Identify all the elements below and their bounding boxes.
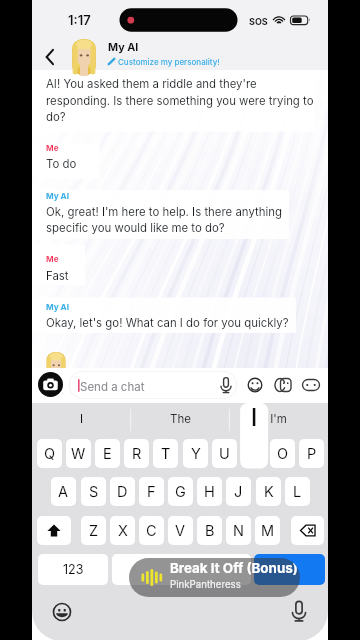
staticText: O <box>277 445 289 463</box>
staticText: P <box>307 445 317 463</box>
button[interactable]: 123 <box>38 554 108 585</box>
staticText: S <box>89 483 99 501</box>
staticText: J <box>234 483 243 501</box>
staticText: Q <box>44 445 56 463</box>
button[interactable]: My AI <box>107 38 237 68</box>
button[interactable]: N <box>226 516 251 545</box>
button[interactable]: D <box>110 477 135 506</box>
staticText: Me <box>46 254 59 264</box>
button[interactable]: I'm <box>229 403 328 433</box>
staticText: T <box>161 445 171 463</box>
staticText: X <box>118 522 128 540</box>
button[interactable]: Shift <box>37 516 71 545</box>
staticText: U <box>219 445 230 463</box>
button[interactable]: I <box>32 403 131 433</box>
staticText: SOS <box>249 16 268 27</box>
button[interactable]: R <box>124 439 149 468</box>
staticText: D <box>117 483 128 501</box>
button[interactable]: Send <box>254 554 325 585</box>
staticText: To do <box>46 157 77 171</box>
staticText: The <box>131 412 230 426</box>
staticText: Okay, let's go! What can I do for you qu… <box>46 316 289 330</box>
staticText: Send a chat <box>80 380 145 394</box>
button[interactable]: U <box>212 439 237 468</box>
staticText: do? <box>46 110 66 124</box>
staticText: responding. Is there something you were … <box>46 94 314 108</box>
staticText: Ok, great! I'm here to help. Is there an… <box>46 205 282 219</box>
button[interactable]: F <box>139 477 164 506</box>
button[interactable]: C <box>139 516 164 545</box>
button[interactable]: Voice note <box>215 374 237 396</box>
button[interactable]: Stickers <box>272 374 294 396</box>
button[interactable]: G <box>168 477 193 506</box>
staticText: A <box>58 483 69 501</box>
staticText: 123 <box>63 562 84 577</box>
staticText: M <box>261 522 275 540</box>
button[interactable]: A <box>51 477 76 506</box>
staticText: G <box>175 483 186 501</box>
staticText: Customize my personality! <box>118 57 220 67</box>
button[interactable]: V <box>168 516 193 545</box>
button[interactable]: Emoji keyboard <box>51 601 73 623</box>
staticText: PinkPantheress <box>170 579 241 591</box>
button[interactable]: P <box>299 439 324 468</box>
button[interactable]: M <box>255 516 280 545</box>
button[interactable]: Break It Off (Bonus) <box>129 558 300 597</box>
staticText: R <box>132 445 142 463</box>
button[interactable]: Open camera <box>38 372 63 397</box>
staticText: 1:17 <box>68 12 91 28</box>
staticText: C <box>146 522 157 540</box>
staticText: F <box>147 483 156 501</box>
button[interactable]: X <box>110 516 135 545</box>
staticText: V <box>175 522 186 540</box>
button[interactable]: Back <box>39 44 65 70</box>
staticText: E <box>103 445 112 463</box>
staticText: Break It Off (Bonus) <box>170 560 298 576</box>
staticText: AI! You asked them a riddle and they're <box>46 77 257 91</box>
staticText: My AI <box>108 41 139 54</box>
button[interactable]: H <box>197 477 222 506</box>
button[interactable]: B <box>197 516 222 545</box>
button[interactable]: E <box>95 439 120 468</box>
button[interactable]: Voice input <box>288 600 310 622</box>
staticText: Y <box>191 445 201 463</box>
staticText: My AI <box>46 191 69 201</box>
staticText: Me <box>46 143 59 153</box>
button[interactable]: S <box>81 477 106 506</box>
staticText: K <box>264 483 274 501</box>
button[interactable]: Games <box>300 374 322 396</box>
staticText: N <box>233 522 244 540</box>
staticText: Fast <box>46 269 69 283</box>
button[interactable]: K <box>256 477 281 506</box>
staticText: B <box>205 522 215 540</box>
button[interactable]: Send a chat <box>69 371 237 399</box>
button[interactable]: O <box>270 439 295 468</box>
button[interactable]: J <box>226 477 251 506</box>
staticText: I'm <box>229 412 328 426</box>
button[interactable]: W <box>66 439 91 468</box>
staticText: I <box>240 402 268 432</box>
button[interactable]: The <box>131 403 230 433</box>
staticText: W <box>71 445 86 463</box>
staticText: My AI <box>46 302 69 312</box>
button[interactable]: Emoji <box>244 374 266 396</box>
button[interactable]: L <box>285 477 310 506</box>
staticText: H <box>204 483 215 501</box>
button[interactable]: Z <box>81 516 106 545</box>
button[interactable]: Q <box>37 439 62 468</box>
button[interactable]: T <box>153 439 178 468</box>
staticText: I <box>32 412 131 426</box>
button[interactable]: Y <box>183 439 208 468</box>
button[interactable]: Space <box>112 554 251 585</box>
staticText: Z <box>89 522 99 540</box>
button[interactable]: Backspace <box>291 516 324 545</box>
staticText: specific you would like me to do? <box>46 221 225 235</box>
staticText: L <box>293 483 302 501</box>
